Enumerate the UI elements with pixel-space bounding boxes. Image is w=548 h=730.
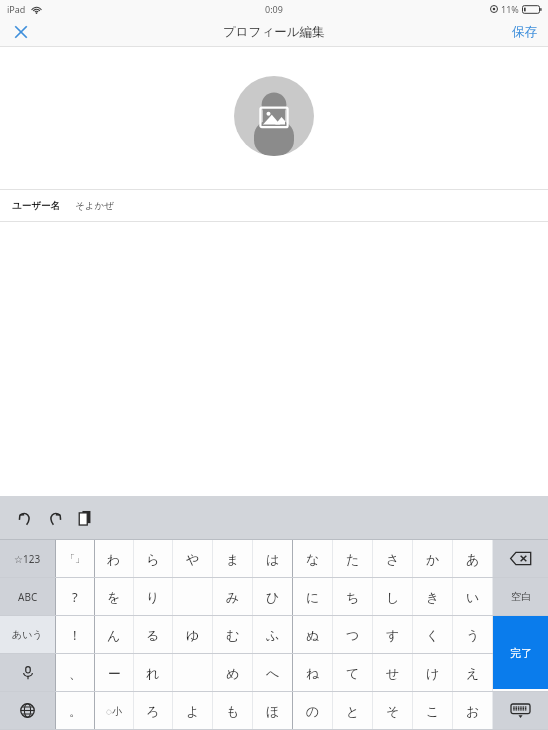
button[interactable]: 削除	[493, 540, 548, 577]
button[interactable]: け	[413, 654, 452, 691]
button[interactable]	[493, 654, 548, 691]
button[interactable]: ゆ	[173, 616, 212, 653]
button[interactable]: 。	[56, 692, 94, 729]
button[interactable]: こ	[413, 692, 452, 729]
staticText: た	[346, 551, 360, 567]
button[interactable]: ユーザー名	[0, 190, 548, 221]
button[interactable]: む	[213, 616, 252, 653]
button[interactable]: く	[413, 616, 452, 653]
staticText: を	[107, 589, 121, 605]
staticText: ◌小	[106, 704, 122, 718]
button[interactable]: め	[213, 654, 252, 691]
staticText: む	[226, 627, 240, 643]
button[interactable]: !	[56, 616, 94, 653]
button[interactable]: し	[373, 578, 412, 615]
button[interactable]: う	[453, 616, 492, 653]
staticText: 空白	[511, 590, 531, 603]
staticText: あいう	[12, 628, 43, 641]
staticText: ABC	[18, 590, 38, 604]
button[interactable]: に	[293, 578, 332, 615]
button[interactable]: よ	[173, 692, 212, 729]
button[interactable]: も	[213, 692, 252, 729]
staticText: れ	[146, 665, 160, 681]
button[interactable]: は	[253, 540, 292, 577]
staticText: ま	[226, 551, 240, 567]
button[interactable]: き	[413, 578, 452, 615]
button[interactable]: い	[453, 578, 492, 615]
button[interactable]: ふ	[253, 616, 292, 653]
button[interactable]: キーボードを閉じる	[493, 692, 548, 729]
button[interactable]: わ	[95, 540, 133, 577]
staticText: ね	[306, 665, 320, 681]
staticText: ?	[72, 588, 78, 606]
staticText: つ	[346, 627, 360, 643]
button[interactable]: ひ	[253, 578, 292, 615]
button[interactable]: 閉じる	[0, 18, 42, 46]
staticText: い	[466, 589, 480, 605]
button[interactable]: 「」	[56, 540, 94, 577]
button[interactable]: 、	[56, 654, 94, 691]
button[interactable]: み	[213, 578, 252, 615]
button[interactable]: お	[453, 692, 492, 729]
staticText: わ	[107, 551, 121, 567]
staticText: と	[346, 703, 360, 719]
button[interactable]: ぬ	[293, 616, 332, 653]
button[interactable]: て	[333, 654, 372, 691]
button[interactable]: 音声入力	[0, 654, 55, 691]
button[interactable]: 完了	[493, 616, 548, 689]
staticText: そ	[386, 703, 400, 719]
staticText: あ	[466, 551, 480, 567]
button[interactable]: 保存	[501, 18, 548, 46]
button[interactable]: そ	[373, 692, 412, 729]
button[interactable]	[493, 616, 548, 653]
button[interactable]: ん	[95, 616, 133, 653]
staticText: ふ	[266, 627, 280, 643]
button[interactable]: さ	[373, 540, 412, 577]
button[interactable]: ☆123	[0, 540, 55, 577]
button[interactable]: 取り消す	[12, 505, 38, 531]
button[interactable]: た	[333, 540, 372, 577]
staticText: え	[466, 665, 480, 681]
button[interactable]: る	[134, 616, 172, 653]
button[interactable]: と	[333, 692, 372, 729]
button[interactable]: あいう	[0, 616, 55, 653]
button[interactable]: え	[453, 654, 492, 691]
button[interactable]: れ	[134, 654, 172, 691]
button[interactable]: ペースト	[72, 505, 98, 531]
button[interactable]: あ	[453, 540, 492, 577]
staticText: お	[466, 703, 480, 719]
button[interactable]: ま	[213, 540, 252, 577]
button[interactable]: ほ	[253, 692, 292, 729]
button[interactable]: キーボード切替	[0, 692, 55, 729]
button[interactable]: ABC	[0, 578, 55, 615]
button[interactable]: り	[134, 578, 172, 615]
staticText: そよかぜ	[75, 200, 114, 212]
button[interactable]: の	[293, 692, 332, 729]
button[interactable]: を	[95, 578, 133, 615]
button[interactable]: ね	[293, 654, 332, 691]
button[interactable]: ろ	[134, 692, 172, 729]
button[interactable]: な	[293, 540, 332, 577]
staticText: さ	[386, 551, 400, 567]
button[interactable]: へ	[253, 654, 292, 691]
button[interactable]: や	[173, 540, 212, 577]
button[interactable]: プロフィール写真を変更	[234, 76, 314, 156]
button[interactable]: ◌小	[95, 692, 133, 729]
staticText: め	[226, 665, 240, 681]
staticText: は	[266, 551, 280, 567]
button[interactable]: す	[373, 616, 412, 653]
button[interactable]: ?	[56, 578, 94, 615]
staticText: ☆123	[14, 552, 41, 566]
button[interactable]: せ	[373, 654, 412, 691]
button[interactable]: つ	[333, 616, 372, 653]
button[interactable]: やり直す	[42, 505, 68, 531]
button[interactable]: ち	[333, 578, 372, 615]
button[interactable]: か	[413, 540, 452, 577]
button[interactable]: 空白	[493, 578, 548, 615]
button[interactable]: ー	[95, 654, 133, 691]
staticText: り	[146, 589, 160, 605]
staticText: 0:09	[265, 3, 283, 15]
button[interactable]: ら	[134, 540, 172, 577]
